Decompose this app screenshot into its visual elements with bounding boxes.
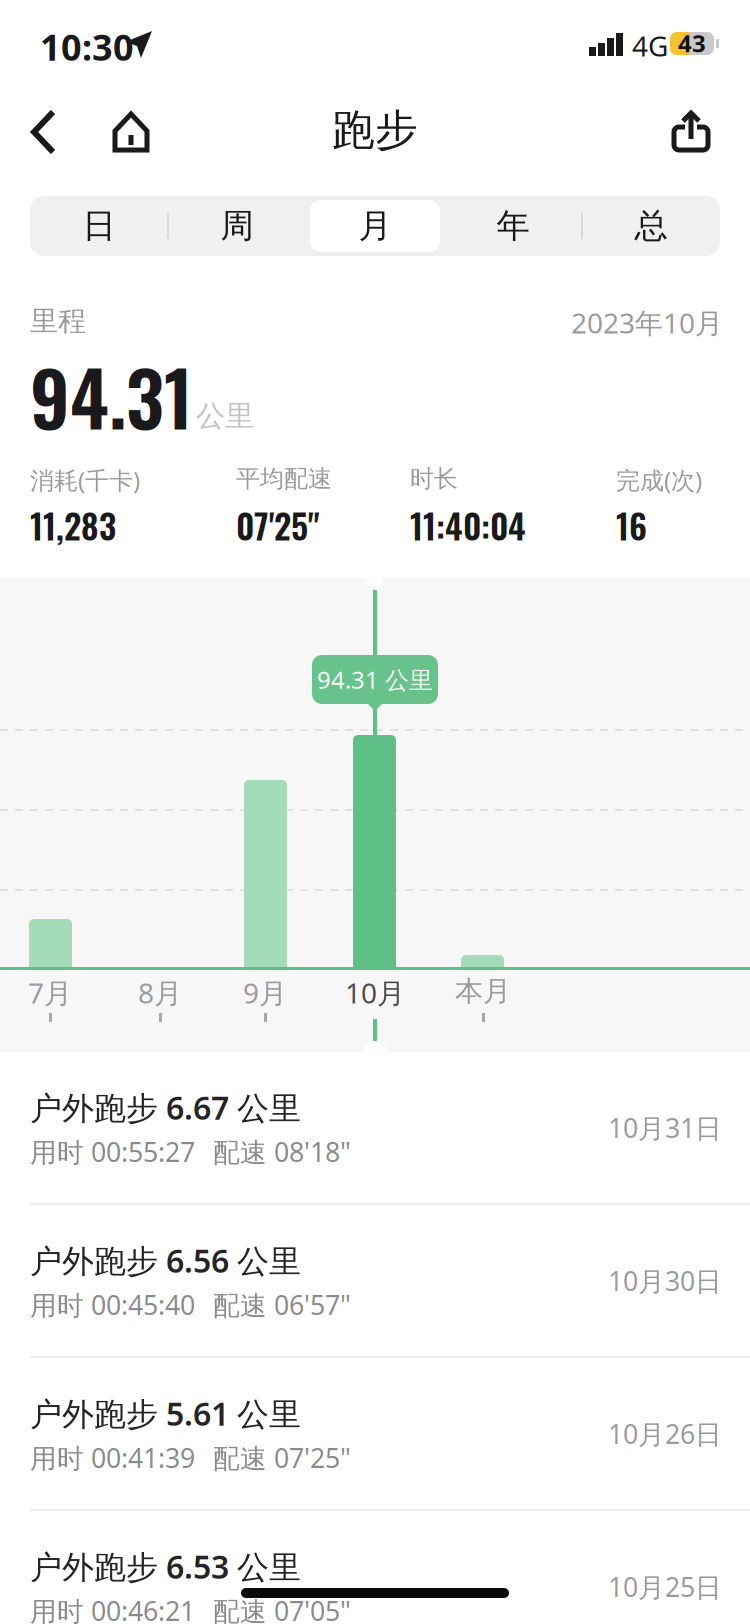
button[interactable]: Home [107, 104, 155, 160]
staticText: 平均配速 [236, 464, 332, 493]
staticText: 4G [632, 27, 668, 64]
staticText: 9月 [243, 974, 287, 1011]
staticText: 消耗(千卡) [30, 464, 140, 496]
staticText: 配速 07'25" [213, 1440, 351, 1475]
staticText: 配速 06'57" [213, 1287, 351, 1322]
staticText: 月 [358, 205, 391, 246]
staticText: 本月 [455, 974, 511, 1008]
staticText: 94.31 公里 [317, 664, 433, 695]
staticText: 完成(次) [616, 464, 702, 496]
staticText: 用时 00:46:21 [30, 1593, 195, 1624]
button[interactable]: 户外跑步 6.56 公里 [0, 1205, 750, 1357]
button[interactable]: 周 [168, 196, 306, 256]
staticText: 43 [678, 27, 706, 59]
staticText: 户外跑步 6.56 公里 [30, 1239, 301, 1281]
staticText: 用时 00:55:27 [30, 1134, 195, 1169]
staticText: 11:40:04 [410, 500, 526, 550]
button[interactable]: 年 [444, 196, 582, 256]
staticText: 07'25" [236, 500, 320, 550]
button[interactable]: 总 [582, 196, 720, 256]
staticText: 94.31 [30, 340, 193, 451]
staticText: 10月 [345, 974, 405, 1011]
staticText: 配速 08'18" [213, 1134, 351, 1169]
staticText: 里程 [30, 304, 86, 338]
staticText: 10月30日 [608, 1263, 722, 1298]
staticText: 户外跑步 6.53 公里 [30, 1545, 301, 1587]
staticText: 周 [220, 205, 253, 246]
staticText: 10:30 [40, 23, 134, 71]
button[interactable]: 日 [30, 196, 168, 256]
staticText: 户外跑步 5.61 公里 [30, 1392, 301, 1434]
staticText: 配速 07'05" [213, 1593, 351, 1624]
button[interactable]: Share [666, 104, 718, 160]
button[interactable]: 月 [306, 196, 444, 256]
button[interactable]: Back [26, 104, 70, 160]
staticText: 户外跑步 6.67 公里 [30, 1086, 301, 1128]
staticText: 7月 [28, 974, 72, 1011]
staticText: 10月25日 [608, 1569, 722, 1604]
staticText: 10月26日 [608, 1416, 722, 1451]
staticText: 10月31日 [608, 1110, 722, 1145]
staticText: 时长 [410, 464, 458, 493]
staticText: 总 [634, 205, 667, 246]
staticText: 2023年10月 [571, 304, 723, 341]
staticText: 日 [82, 205, 115, 246]
staticText: 年 [496, 205, 529, 246]
staticText: 16 [616, 500, 647, 550]
staticText: 11,283 [30, 500, 116, 550]
button[interactable]: 户外跑步 6.53 公里 [0, 1511, 750, 1624]
staticText: 8月 [138, 974, 182, 1011]
button[interactable]: 户外跑步 6.67 公里 [0, 1052, 750, 1204]
staticText: 用时 00:45:40 [30, 1287, 195, 1322]
staticText: 用时 00:41:39 [30, 1440, 195, 1475]
button[interactable]: 户外跑步 5.61 公里 [0, 1358, 750, 1510]
staticText: 跑步 [332, 104, 418, 156]
staticText: 公里 [196, 398, 254, 434]
